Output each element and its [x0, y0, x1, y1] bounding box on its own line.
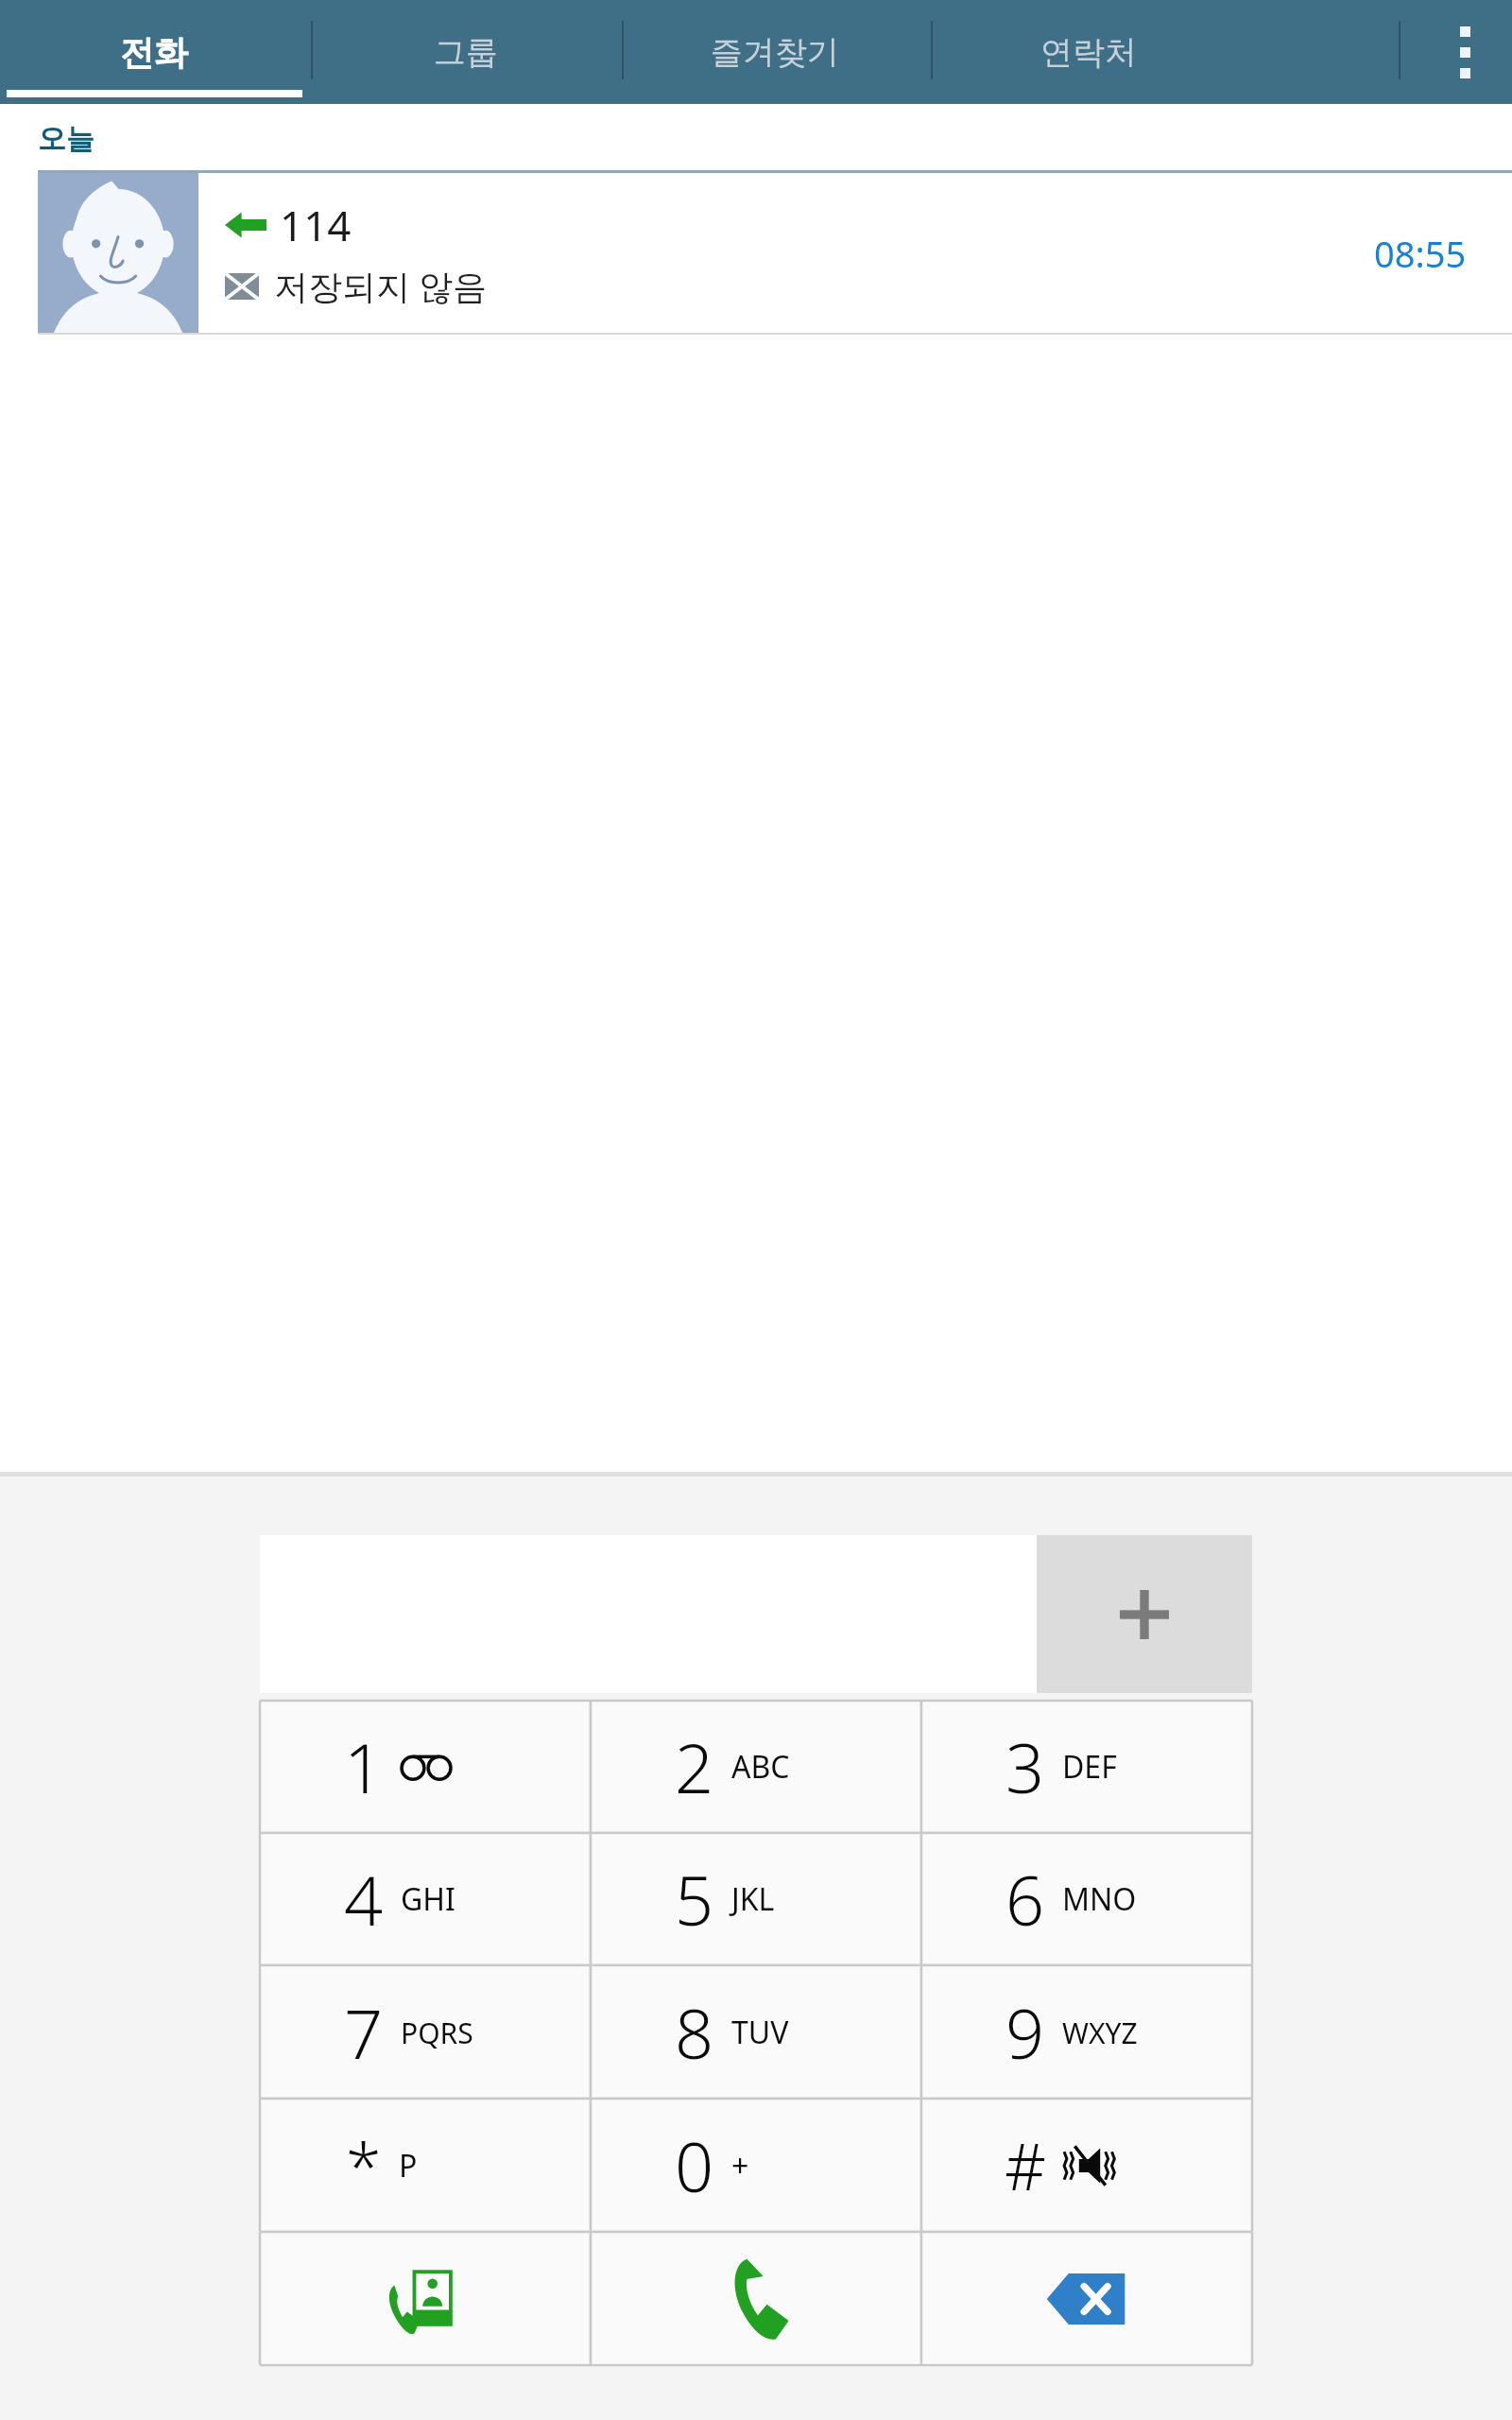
button[interactable]: * [260, 2099, 591, 2232]
button[interactable]: 그룹 [324, 0, 608, 104]
staticText: 08:55 [1374, 229, 1467, 278]
button[interactable]: 2 [591, 1701, 921, 1833]
staticText: 114 [280, 197, 352, 253]
staticText: 2 [675, 1720, 714, 1813]
staticText: PQRS [401, 2014, 473, 2052]
staticText: 1 [344, 1720, 384, 1813]
staticText: 5 [675, 1853, 714, 1945]
button[interactable]: 7 [260, 1965, 591, 2099]
button[interactable]: 0 [591, 2099, 921, 2232]
staticText: 4 [344, 1853, 384, 1945]
staticText: MNO [1062, 1878, 1137, 1920]
staticText: TUV [731, 2012, 789, 2053]
staticText: DEF [1062, 1746, 1117, 1788]
staticText: 7 [344, 1986, 384, 2079]
button[interactable]: More options [1417, 0, 1512, 104]
button[interactable]: Backspace [921, 2232, 1252, 2365]
button[interactable]: Add to contacts [260, 2232, 591, 2365]
staticText: * [346, 2121, 382, 2209]
staticText: 8 [675, 1986, 714, 2079]
staticText: 전화 [120, 31, 188, 74]
staticText: 0 [675, 2119, 714, 2212]
staticText: + [731, 2145, 749, 2187]
staticText: # [1005, 2121, 1046, 2209]
button[interactable]: 연락처 [947, 0, 1230, 104]
staticText: 그룹 [434, 32, 498, 73]
button[interactable]: 8 [591, 1965, 921, 2099]
button[interactable]: # [921, 2099, 1252, 2232]
staticText: WXYZ [1062, 2014, 1138, 2052]
button[interactable]: 1 [260, 1701, 591, 1833]
staticText: 3 [1005, 1720, 1045, 1813]
staticText: P [399, 2145, 418, 2187]
button[interactable]: 4 [260, 1833, 591, 1965]
button[interactable]: 9 [921, 1965, 1252, 2099]
staticText: 9 [1005, 1986, 1045, 2079]
staticText: JKL [731, 1878, 775, 1920]
button[interactable]: 114 [0, 173, 1512, 333]
button[interactable]: 3 [921, 1701, 1252, 1833]
staticText: 저장되지 않음 [274, 263, 488, 309]
staticText: 오늘 [38, 121, 94, 157]
staticText: 6 [1005, 1853, 1045, 1945]
staticText: 연락처 [1040, 32, 1137, 73]
button[interactable]: Add pause [1037, 1535, 1252, 1693]
button[interactable]: 즐겨찾기 [633, 0, 917, 104]
staticText: ABC [731, 1746, 790, 1788]
staticText: GHI [401, 1878, 455, 1920]
button[interactable]: 6 [921, 1833, 1252, 1965]
staticText: 즐겨찾기 [711, 32, 839, 73]
button[interactable]: 5 [591, 1833, 921, 1965]
button[interactable]: 전화 [12, 0, 296, 104]
button[interactable]: Call [591, 2232, 921, 2365]
